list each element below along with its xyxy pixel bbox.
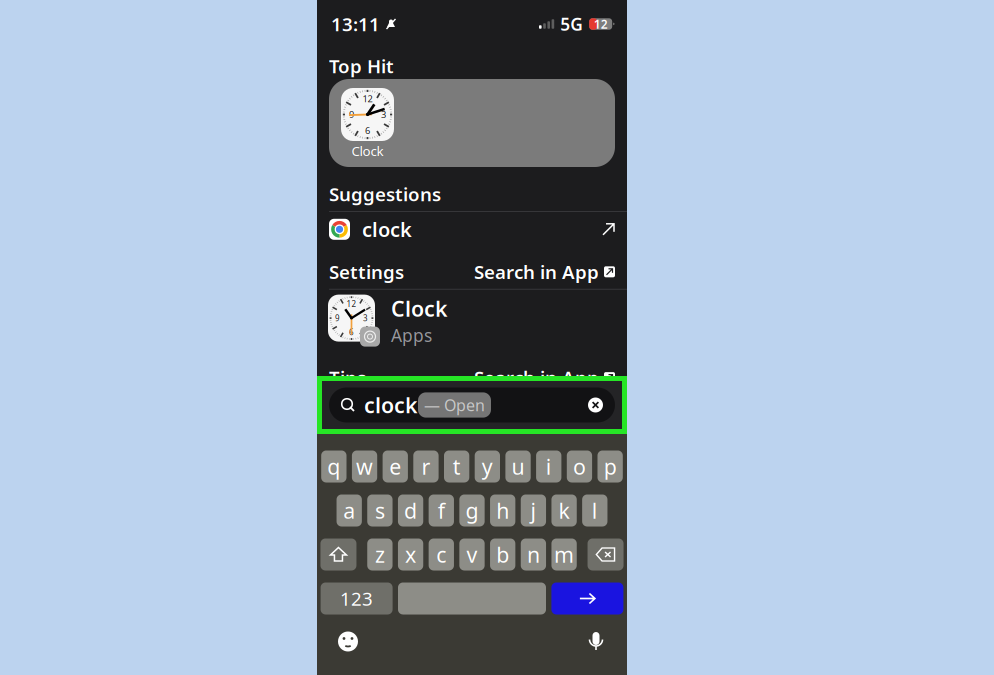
button[interactable]: e [383, 450, 408, 482]
staticText: i [546, 452, 552, 481]
button[interactable]: Delete [587, 538, 623, 570]
staticText: 12 [362, 92, 372, 105]
staticText: z [375, 540, 385, 569]
staticText: l [592, 496, 598, 525]
staticText: clock [362, 216, 412, 243]
staticText: 123 [340, 586, 373, 611]
button[interactable]: b [490, 538, 515, 570]
button[interactable]: z [367, 538, 392, 570]
staticText: b [496, 540, 509, 569]
button[interactable]: m [551, 538, 577, 570]
staticText: Clock [391, 294, 448, 323]
staticText: Search in App [474, 365, 599, 390]
button[interactable]: w [352, 450, 377, 482]
staticText: Top Hit [329, 54, 394, 78]
button[interactable]: l [582, 494, 607, 526]
button[interactable]: clock [317, 217, 627, 242]
staticText: Clock [351, 142, 383, 160]
button[interactable]: clock [317, 376, 627, 434]
button[interactable]: 12 [317, 294, 627, 348]
button[interactable]: g [459, 494, 485, 526]
button[interactable]: p [597, 450, 623, 482]
button[interactable]: Go [551, 582, 623, 614]
staticText: t [453, 452, 461, 481]
button[interactable]: x [398, 538, 423, 570]
staticText: e [389, 452, 401, 481]
staticText: clock [364, 391, 418, 419]
staticText: Tips [329, 365, 366, 390]
staticText: Suggestions [329, 182, 441, 206]
button[interactable]: 123 [321, 582, 393, 614]
button[interactable]: j [521, 494, 546, 526]
staticText: 9 [349, 108, 354, 121]
button[interactable]: u [505, 450, 531, 482]
staticText: Settings [329, 259, 404, 284]
button[interactable]: y [475, 450, 500, 482]
staticText: a [343, 496, 355, 525]
staticText: r [421, 452, 430, 481]
button[interactable]: f [429, 494, 454, 526]
button[interactable]: d [398, 494, 423, 526]
staticText: f [438, 496, 445, 525]
staticText: p [604, 452, 617, 481]
button[interactable]: v [459, 538, 485, 570]
staticText: n [527, 540, 540, 569]
button[interactable]: r [413, 450, 439, 482]
staticText: j [530, 496, 536, 525]
button[interactable]: c [429, 538, 454, 570]
button[interactable]: Search in App [474, 365, 615, 390]
staticText: 13:11 [331, 12, 380, 36]
staticText: v [466, 540, 477, 569]
button[interactable]: Dictation [581, 626, 611, 656]
button[interactable]: n [521, 538, 546, 570]
button[interactable]: Emoji [333, 626, 363, 656]
staticText: 6 [365, 124, 370, 137]
button[interactable]: a [336, 494, 362, 526]
button[interactable]: t [444, 450, 469, 482]
button[interactable]: s [367, 494, 392, 526]
staticText: m [554, 540, 574, 569]
staticText: Search in App [474, 259, 599, 284]
staticText: c [436, 540, 446, 569]
staticText: x [405, 540, 416, 569]
staticText: u [511, 452, 524, 481]
staticText: Apps [391, 324, 432, 347]
button[interactable]: Search in App [474, 259, 615, 284]
staticText: d [404, 496, 417, 525]
staticText: 6 [349, 327, 354, 337]
staticText: 12 [346, 299, 356, 309]
button[interactable]: o [567, 450, 592, 482]
staticText: h [496, 496, 509, 525]
staticText: y [482, 452, 493, 481]
button[interactable]: i [536, 450, 561, 482]
staticText: 3 [381, 108, 386, 121]
staticText: 3 [363, 313, 368, 323]
staticText: 12 [594, 16, 608, 32]
staticText: o [573, 452, 586, 481]
button[interactable]: 12 [317, 79, 627, 167]
button[interactable]: q [321, 450, 346, 482]
staticText: k [559, 496, 570, 525]
button[interactable]: k [551, 494, 577, 526]
staticText: g [465, 496, 478, 525]
staticText: q [327, 452, 340, 481]
button[interactable]: h [490, 494, 515, 526]
staticText: w [356, 452, 373, 481]
staticText: 5G [560, 12, 583, 35]
staticText: — Open [424, 394, 485, 416]
staticText: s [375, 496, 385, 525]
button[interactable]: Shift [320, 538, 356, 570]
button[interactable] [398, 582, 546, 614]
staticText: 9 [335, 313, 340, 323]
